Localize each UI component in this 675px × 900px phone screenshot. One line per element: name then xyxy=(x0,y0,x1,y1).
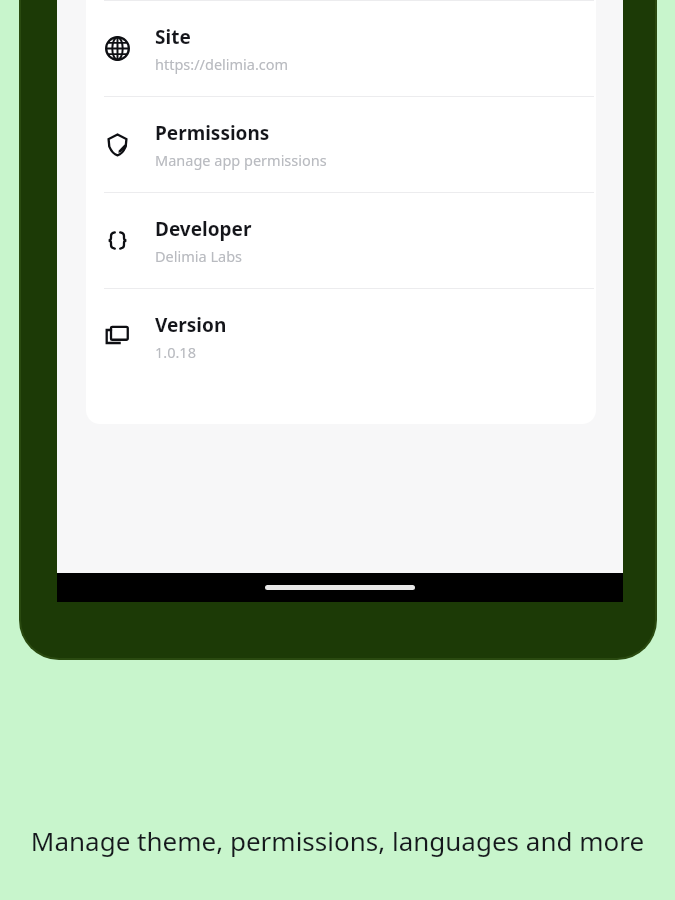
other: Developer xyxy=(104,227,131,254)
staticText: https://delimia.com xyxy=(155,54,289,74)
button[interactable]: Version xyxy=(86,289,596,384)
staticText: Site xyxy=(155,24,191,50)
staticText: Delimia Labs xyxy=(155,246,243,266)
button[interactable]: Site xyxy=(86,1,596,96)
staticText: Manage app permissions xyxy=(155,150,327,170)
button[interactable]: Developer xyxy=(86,193,596,288)
other: Permissions xyxy=(104,131,131,158)
staticText: 1.0.18 xyxy=(155,342,196,362)
other: Version xyxy=(104,323,131,350)
button[interactable]: Permissions xyxy=(86,97,596,192)
staticText: Version xyxy=(155,312,227,338)
staticText: Developer xyxy=(155,216,252,242)
other: Site xyxy=(104,35,131,62)
staticText: Permissions xyxy=(155,120,270,146)
staticText: Manage theme, permissions, languages and… xyxy=(30,823,645,858)
